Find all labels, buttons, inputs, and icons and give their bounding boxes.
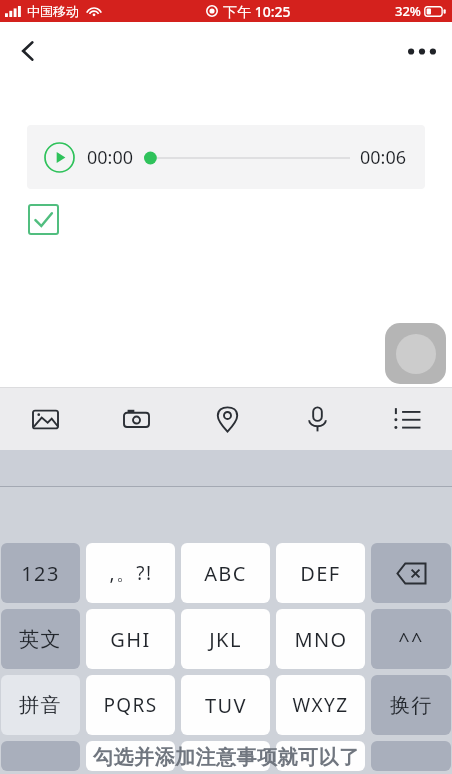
button[interactable]: Checkbox, checked — [28, 204, 59, 235]
button[interactable]: Photos — [0, 388, 91, 450]
staticText: ABC — [204, 560, 247, 587]
staticText: GHI — [110, 626, 151, 653]
staticText: 123 — [21, 560, 60, 587]
button[interactable]: 拼音 — [1, 675, 80, 735]
staticText: 中国移动 — [27, 3, 79, 19]
staticText: 00:06 — [360, 145, 407, 170]
staticText: PQRS — [103, 692, 158, 718]
staticText: JKL — [209, 626, 242, 653]
button[interactable]: List — [362, 388, 452, 450]
button[interactable]: 英文 — [1, 609, 80, 669]
staticText: ^^ — [398, 626, 424, 653]
button[interactable]: Play — [27, 125, 425, 189]
button[interactable]: TUV — [181, 675, 270, 735]
button[interactable]: ,。?! — [86, 543, 175, 603]
staticText: 00:00 — [87, 145, 134, 170]
staticText: 拼音 — [19, 693, 62, 718]
button[interactable]: Key — [86, 741, 175, 771]
button[interactable]: Assistive touch — [385, 323, 446, 384]
button[interactable]: 换行 — [371, 675, 451, 735]
button[interactable]: ^^ — [371, 609, 451, 669]
button[interactable]: Key — [371, 741, 451, 771]
staticText: ,。?! — [109, 560, 153, 586]
staticText: TUV — [205, 692, 247, 719]
button[interactable]: Camera — [91, 388, 182, 450]
button[interactable]: PQRS — [86, 675, 175, 735]
button[interactable]: 123 — [1, 543, 80, 603]
staticText: WXYZ — [292, 692, 349, 718]
other: Play — [44, 142, 75, 173]
button[interactable]: Key — [181, 741, 270, 771]
button[interactable]: ABC — [181, 543, 270, 603]
button[interactable]: GHI — [86, 609, 175, 669]
button[interactable]: Microphone — [272, 388, 362, 450]
button[interactable]: WXYZ — [276, 675, 365, 735]
button[interactable]: DEF — [276, 543, 365, 603]
button[interactable]: MNO — [276, 609, 365, 669]
staticText: DEF — [300, 560, 341, 587]
staticText: MNO — [294, 626, 348, 653]
button[interactable]: Key — [276, 741, 365, 771]
button[interactable]: JKL — [181, 609, 270, 669]
staticText: 换行 — [390, 693, 433, 718]
staticText: 英文 — [19, 627, 62, 652]
staticText: 下午 10:25 — [223, 2, 291, 21]
button[interactable]: More options — [398, 27, 446, 75]
button[interactable] — [371, 543, 451, 603]
button[interactable]: Key — [1, 741, 80, 771]
staticText: 勾选并添加注意事项就可以了 — [93, 745, 360, 770]
button[interactable]: Location — [182, 388, 272, 450]
staticText: 32% — [395, 2, 421, 20]
button[interactable]: Back — [4, 27, 52, 75]
